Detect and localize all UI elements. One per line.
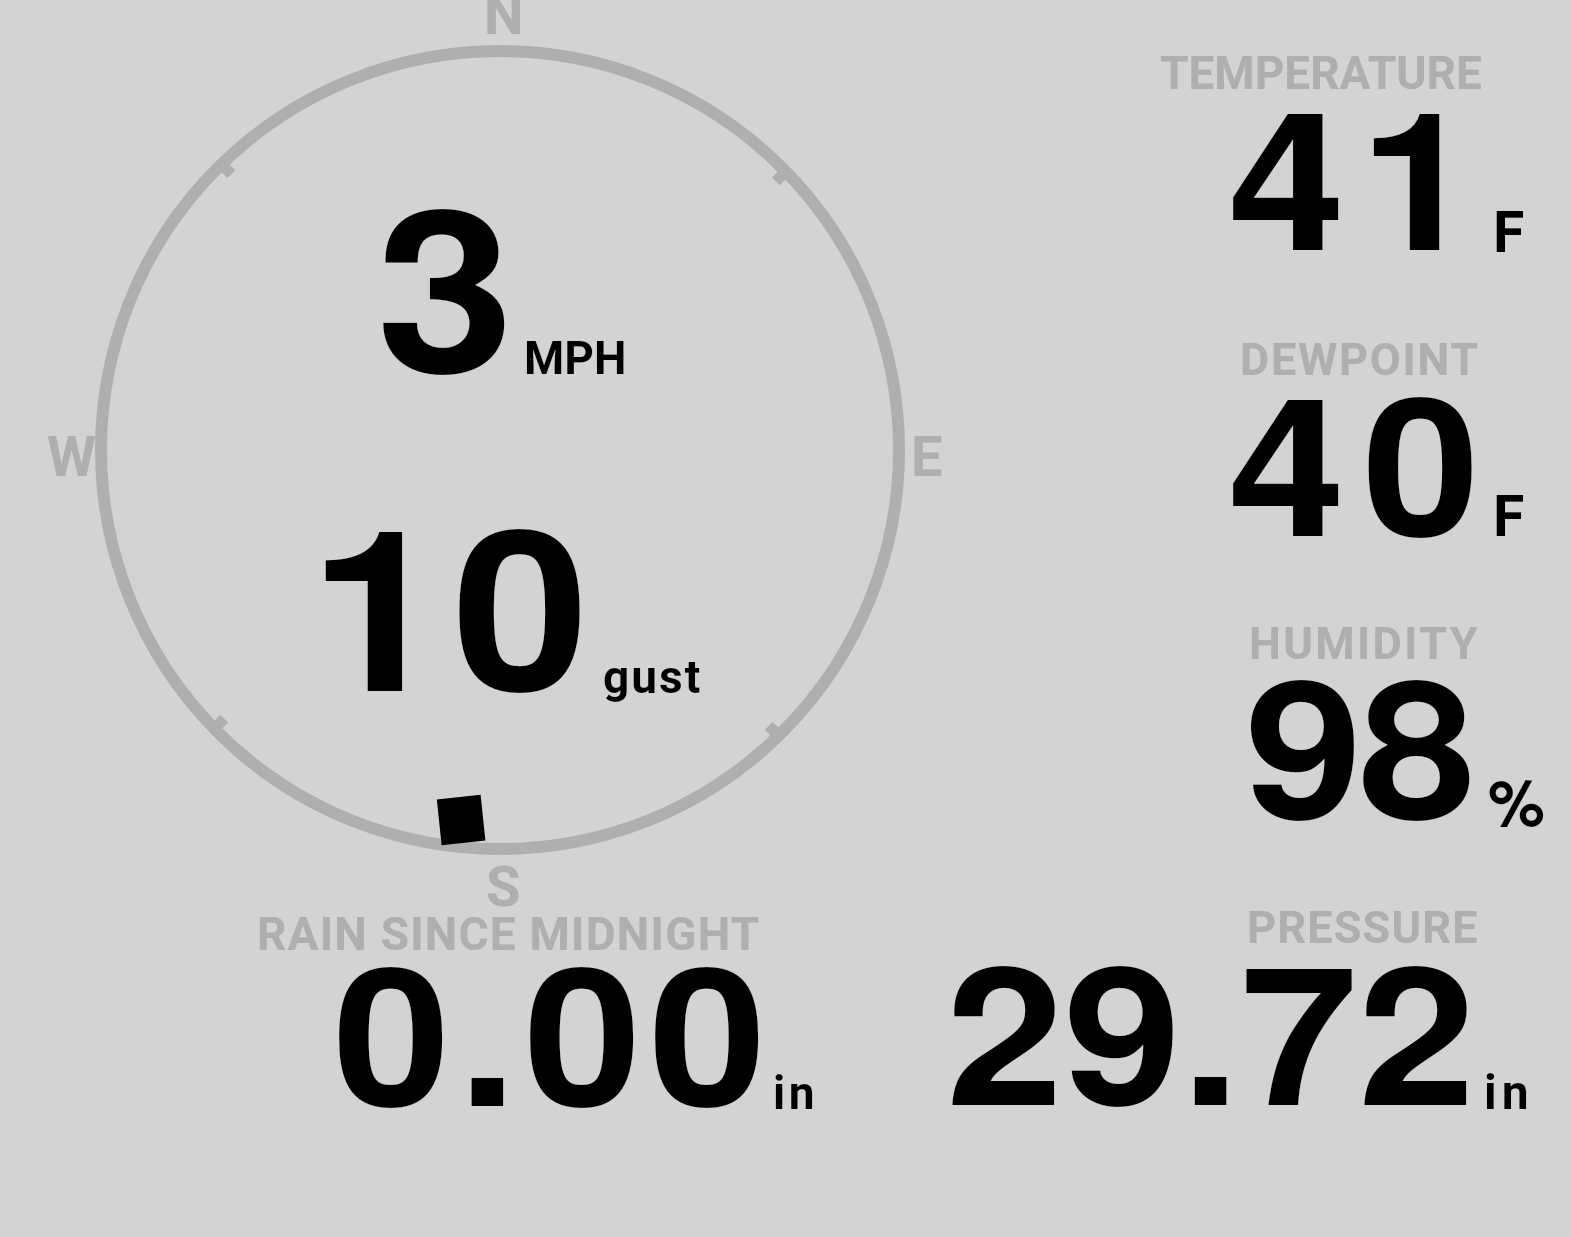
staticText: HUMIDITY [1249, 617, 1480, 670]
staticText: % [1488, 754, 1545, 846]
staticText: 10 [309, 439, 596, 760]
staticText: 3 [376, 119, 515, 443]
staticText: TEMPERATURE [1160, 46, 1482, 100]
staticText: W [47, 424, 96, 490]
staticText: 0.00 [333, 890, 774, 1165]
staticText: DEWPOINT [1240, 333, 1480, 386]
staticText: F [1493, 483, 1525, 550]
staticText: S [486, 854, 521, 920]
staticText: RAIN SINCE MIDNIGHT [257, 907, 761, 961]
staticText: gust [603, 650, 703, 704]
staticText: PRESSURE [1247, 901, 1479, 954]
staticText: E [911, 424, 943, 490]
staticText: in [773, 1066, 818, 1120]
staticText: 98 [1245, 603, 1473, 878]
staticText: N [484, 0, 524, 48]
other: Wind direction dial [0, 0, 1571, 1237]
staticText: F [1493, 199, 1525, 266]
staticText: 41 [1228, 34, 1492, 309]
staticText: 29.72 [946, 889, 1476, 1164]
staticText: MPH [524, 331, 627, 385]
staticText: 40 [1228, 320, 1497, 595]
staticText: in [1484, 1064, 1534, 1120]
